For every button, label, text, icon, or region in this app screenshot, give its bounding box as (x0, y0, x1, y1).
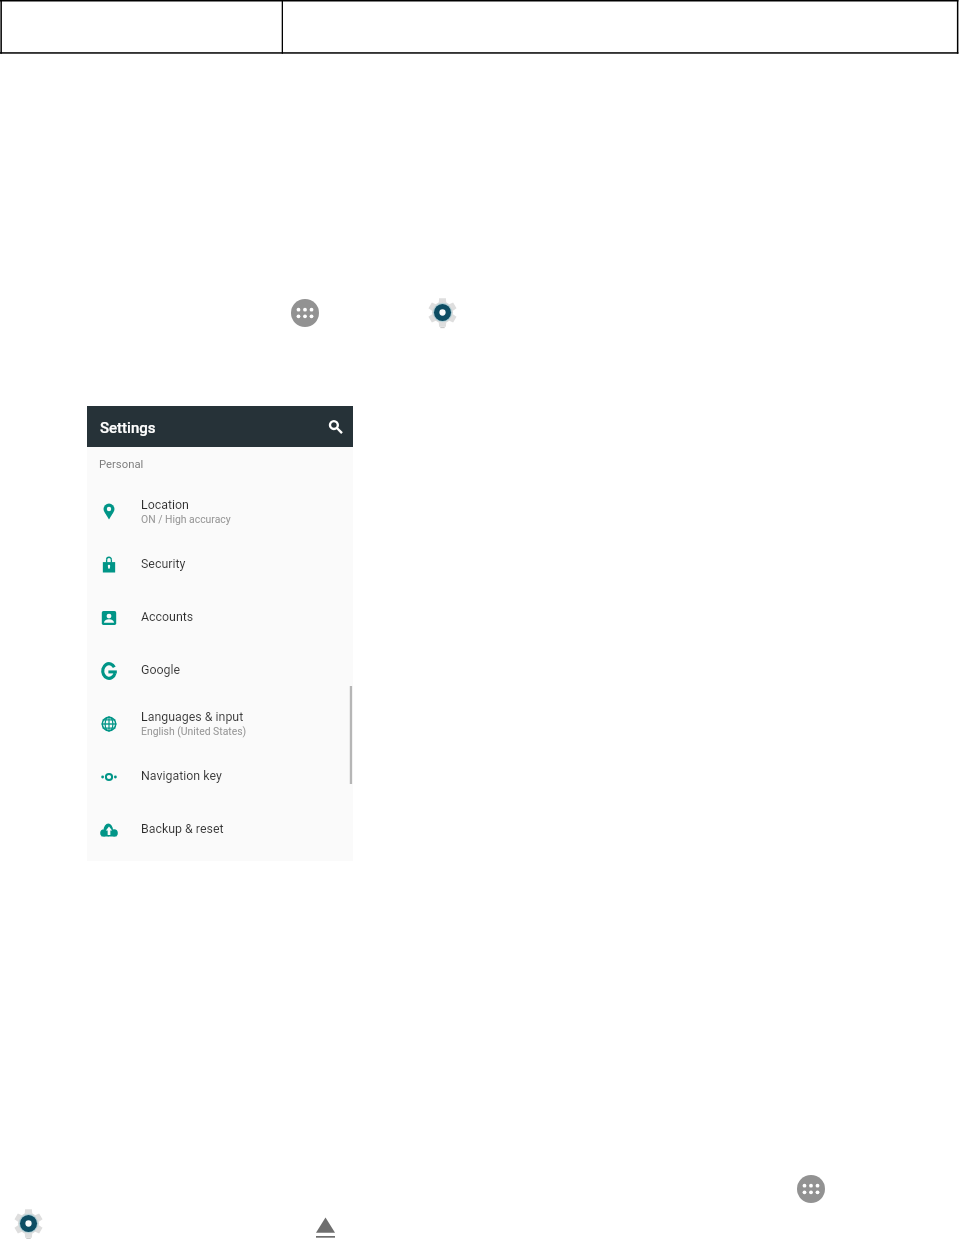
button[interactable]: Settings (428, 298, 457, 327)
button[interactable]: Search (316, 408, 352, 444)
staticText: Security (141, 556, 186, 571)
button[interactable]: Languages & input (87, 696, 353, 749)
staticText: Settings (100, 419, 156, 437)
staticText: ON / High accuracy (141, 513, 231, 525)
staticText: Google (141, 662, 181, 677)
button[interactable]: Navigation key (87, 749, 353, 802)
button[interactable]: Security (87, 537, 353, 590)
staticText: Accounts (141, 609, 194, 624)
staticText: Navigation key (141, 768, 222, 783)
button[interactable]: Google (87, 643, 353, 696)
staticText: Languages & input (141, 709, 244, 724)
staticText: English (United States) (141, 725, 247, 737)
staticText: Location (141, 497, 189, 512)
staticText: Personal (99, 458, 144, 471)
button[interactable]: Location (87, 484, 353, 537)
button[interactable]: Backup & reset (87, 802, 353, 855)
button[interactable]: All apps (797, 1175, 825, 1203)
staticText: Backup & reset (141, 821, 224, 836)
button[interactable]: Eject (316, 1217, 335, 1238)
button[interactable]: Accounts (87, 590, 353, 643)
button[interactable]: All apps (291, 299, 319, 327)
button[interactable]: Settings (14, 1209, 43, 1238)
